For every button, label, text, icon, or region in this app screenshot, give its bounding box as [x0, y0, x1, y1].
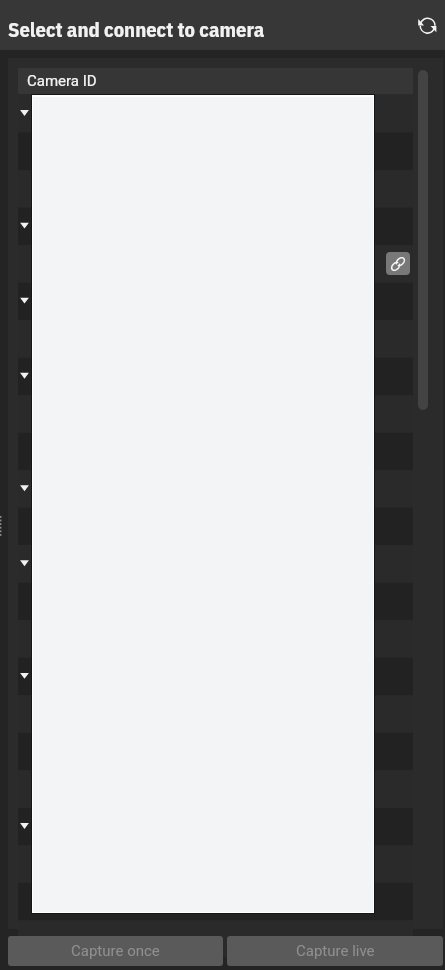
button[interactable]	[18, 243, 413, 280]
button[interactable]	[18, 835, 413, 872]
button[interactable]	[18, 724, 413, 761]
button[interactable]	[18, 391, 413, 428]
staticText: Capture once	[71, 942, 160, 960]
button[interactable]	[18, 687, 413, 724]
button[interactable]	[18, 613, 413, 650]
button[interactable]: Capture live	[227, 936, 443, 966]
button[interactable]	[18, 502, 413, 539]
button[interactable]	[18, 354, 413, 391]
button[interactable]: Link	[386, 252, 410, 275]
button[interactable]	[18, 576, 413, 613]
button[interactable]	[18, 95, 413, 132]
button[interactable]	[18, 132, 413, 169]
button[interactable]	[18, 428, 413, 465]
button[interactable]: Capture once	[8, 936, 223, 966]
button[interactable]	[18, 317, 413, 354]
button[interactable]	[18, 206, 413, 243]
staticText: Capture live	[296, 942, 375, 960]
button[interactable]	[18, 872, 413, 909]
button[interactable]	[18, 465, 413, 502]
button[interactable]	[18, 761, 413, 798]
button[interactable]: Refresh	[410, 11, 442, 43]
button[interactable]	[18, 169, 413, 206]
staticText: Select and connect to camera	[8, 16, 265, 43]
button[interactable]	[18, 650, 413, 687]
button[interactable]	[18, 280, 413, 317]
button[interactable]	[18, 539, 413, 576]
button[interactable]: Camera ID	[18, 68, 413, 94]
button[interactable]	[18, 798, 413, 835]
staticText: Camera ID	[27, 72, 97, 90]
other: Resize panel	[0, 514, 2, 538]
